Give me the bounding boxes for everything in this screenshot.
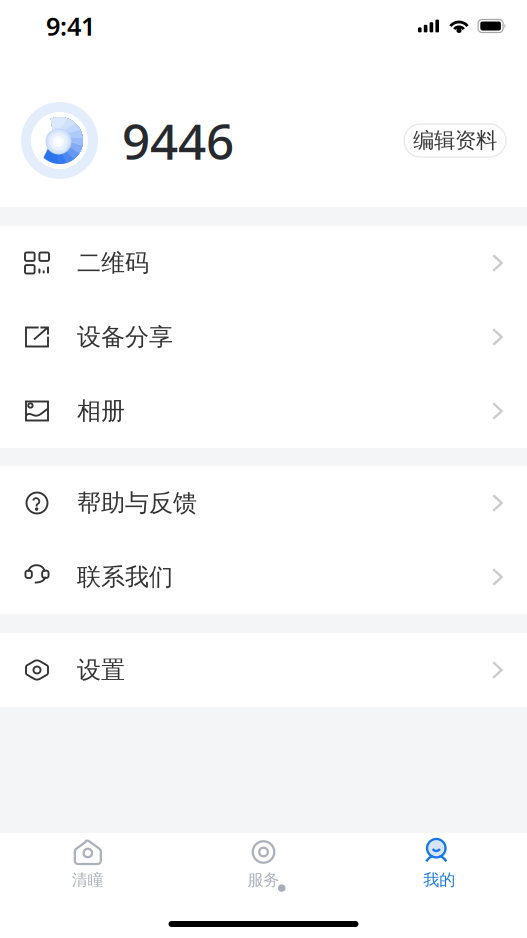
button[interactable]: 清瞳 [0, 833, 176, 895]
button[interactable]: 帮助与反馈 [0, 466, 527, 540]
button[interactable]: 相册 [0, 374, 527, 448]
staticText: 编辑资料 [413, 127, 497, 154]
staticText: 帮助与反馈 [77, 488, 197, 518]
staticText: 服务 [247, 870, 279, 890]
staticText: 9446 [122, 108, 234, 173]
button[interactable]: 二维码 [0, 226, 527, 300]
staticText: 联系我们 [77, 562, 173, 592]
staticText: 设置 [77, 655, 125, 685]
staticText: 二维码 [77, 248, 149, 278]
button[interactable]: 联系我们 [0, 540, 527, 614]
staticText: 相册 [77, 396, 125, 426]
staticText: 我的 [423, 870, 455, 890]
button[interactable]: 我的 [351, 833, 527, 895]
button[interactable]: 设置 [0, 633, 527, 707]
button[interactable]: 编辑资料 [404, 124, 506, 157]
staticText: 设备分享 [77, 322, 173, 352]
button[interactable]: 服务 [176, 833, 351, 895]
button[interactable]: 设备分享 [0, 300, 527, 374]
staticText: 清瞳 [72, 870, 104, 890]
staticText: 9:41 [46, 9, 95, 43]
